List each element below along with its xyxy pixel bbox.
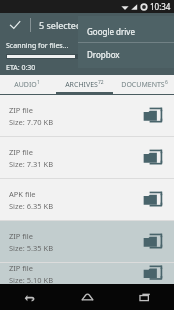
staticText: 72 [98, 79, 104, 86]
staticText: ZIP file [9, 263, 33, 273]
staticText: Size: 5.10 KB [9, 275, 54, 284]
button[interactable]: Done [0, 13, 30, 37]
staticText: DOCUMENTS [121, 80, 165, 90]
staticText: Size: 7.70 KB [9, 117, 54, 127]
staticText: Dropbox [87, 49, 120, 60]
staticText: Google drive [87, 26, 135, 37]
button[interactable]: ZIP file [0, 221, 174, 262]
staticText: ETA: 0:30 [6, 63, 36, 73]
button[interactable]: Back [0, 284, 58, 310]
staticText: APK file [9, 189, 36, 199]
button[interactable]: DOCUMENTS [115, 75, 174, 94]
staticText: Size: 5.35 KB [9, 243, 54, 253]
staticText: Scanning for files... [6, 41, 69, 51]
button[interactable]: ZIP file [0, 137, 174, 178]
button[interactable]: Recents [116, 284, 174, 310]
staticText: 10:34 [150, 1, 171, 12]
staticText: Size: 7.31 KB [9, 159, 54, 169]
button[interactable]: Dropbox [78, 43, 174, 65]
staticText: 6 [165, 79, 168, 86]
button[interactable]: APK file [0, 179, 174, 220]
staticText: ZIP file [9, 147, 33, 157]
staticText: ZIP file [9, 105, 33, 115]
staticText: ZIP file [9, 231, 33, 241]
staticText: AUDIO [14, 80, 37, 90]
button[interactable]: ZIP file [0, 95, 174, 136]
button[interactable]: ZIP file [0, 263, 174, 284]
button[interactable]: ARCHIVES [53, 75, 115, 94]
staticText: 1 [37, 79, 40, 86]
button[interactable]: Save [125, 13, 147, 37]
button[interactable]: 5 selected [39, 19, 82, 31]
button[interactable]: Home [58, 284, 116, 310]
button[interactable]: Google drive [78, 20, 174, 42]
button[interactable]: AUDIO [0, 75, 53, 94]
button[interactable]: Grid view [103, 13, 125, 37]
staticText: Size: 6.35 KB [9, 201, 54, 211]
staticText: ARCHIVES [65, 80, 98, 90]
